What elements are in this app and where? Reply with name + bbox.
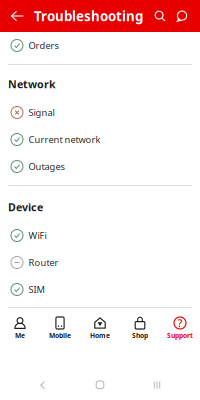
staticText: Router [28, 256, 58, 269]
button[interactable]: Home [80, 312, 120, 346]
button[interactable]: Search [149, 0, 171, 32]
staticText: Current network [28, 133, 100, 146]
button[interactable]: Router [0, 249, 200, 276]
staticText: Outages [28, 160, 64, 173]
staticText: Home [90, 331, 110, 340]
button[interactable]: Me [0, 312, 40, 346]
staticText: WiFi [28, 229, 46, 242]
staticText: Orders [28, 39, 58, 52]
button[interactable]: Outages [0, 153, 200, 180]
staticText: Signal [28, 106, 54, 119]
staticText: ? [177, 316, 182, 330]
button[interactable]: Mobile [40, 312, 80, 346]
staticText: Shop [132, 331, 148, 340]
button[interactable]: Signal [0, 99, 200, 126]
button[interactable]: Home [86, 346, 114, 400]
staticText: Network [8, 77, 56, 91]
button[interactable]: Contact us [171, 0, 193, 32]
button[interactable]: Shop [120, 312, 160, 346]
button[interactable]: ? [160, 312, 200, 346]
button[interactable]: Back [0, 0, 34, 32]
staticText: Device [8, 200, 43, 214]
button[interactable]: Current network [0, 126, 200, 153]
staticText: Mobile [49, 331, 71, 340]
staticText: Troubleshooting [34, 7, 143, 25]
staticText: SIM [28, 283, 44, 296]
staticText: Me [15, 331, 25, 340]
button[interactable]: Orders [0, 32, 200, 59]
button[interactable]: Recent apps [114, 346, 200, 400]
button[interactable]: WiFi [0, 222, 200, 249]
button[interactable]: SIM [0, 276, 200, 303]
staticText: Support [167, 331, 193, 340]
